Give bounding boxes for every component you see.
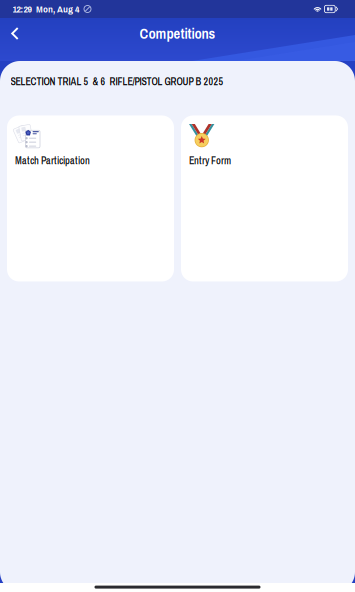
button[interactable]: Match Participation: [7, 115, 174, 281]
staticText: SELECTION TRIAL 5 & 6 RIFLE/PISTOL GROUP…: [10, 75, 223, 88]
button[interactable]: Back: [0, 19, 30, 47]
staticText: 12:29: [12, 2, 31, 16]
staticText: Mon, Aug 4: [36, 2, 79, 16]
staticText: Competitions: [139, 24, 215, 43]
button[interactable]: Entry Form: [181, 115, 348, 281]
staticText: Match Participation: [15, 154, 90, 167]
staticText: Entry Form: [189, 154, 231, 167]
